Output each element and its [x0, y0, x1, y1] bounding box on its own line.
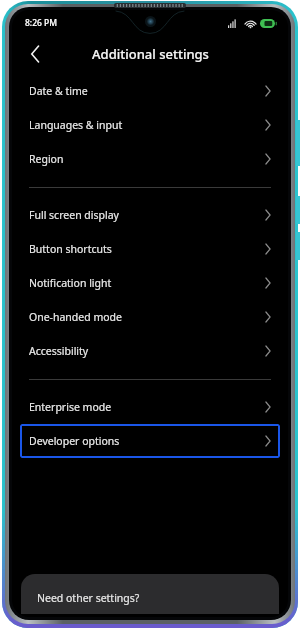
- staticText: Button shortcuts: [29, 242, 265, 256]
- button[interactable]: Date & time: [29, 74, 271, 108]
- staticText: Date & time: [29, 84, 265, 98]
- button[interactable]: Region: [29, 142, 271, 176]
- button[interactable]: Button shortcuts: [29, 232, 271, 266]
- staticText: Full screen display: [29, 208, 265, 222]
- button[interactable]: One-handed mode: [29, 300, 271, 334]
- staticText: Enterprise mode: [29, 400, 265, 414]
- staticText: One-handed mode: [29, 310, 265, 324]
- staticText: Additional settings: [92, 45, 209, 63]
- button[interactable]: Developer options: [29, 424, 271, 458]
- button[interactable]: Full screen display: [29, 198, 271, 232]
- button[interactable]: Languages & input: [29, 108, 271, 142]
- staticText: Developer options: [29, 434, 265, 448]
- button[interactable]: Back: [20, 39, 50, 69]
- button[interactable]: Notification light: [29, 266, 271, 300]
- button[interactable]: Enterprise mode: [29, 390, 271, 424]
- staticText: Need other settings?: [37, 591, 140, 605]
- staticText: Accessibility: [29, 344, 265, 358]
- staticText: 8:26 PM: [25, 17, 58, 29]
- staticText: Notification light: [29, 276, 265, 290]
- staticText: Region: [29, 152, 265, 166]
- button[interactable]: Need other settings?: [21, 574, 279, 614]
- button[interactable]: Accessibility: [29, 334, 271, 368]
- staticText: Languages & input: [29, 118, 265, 132]
